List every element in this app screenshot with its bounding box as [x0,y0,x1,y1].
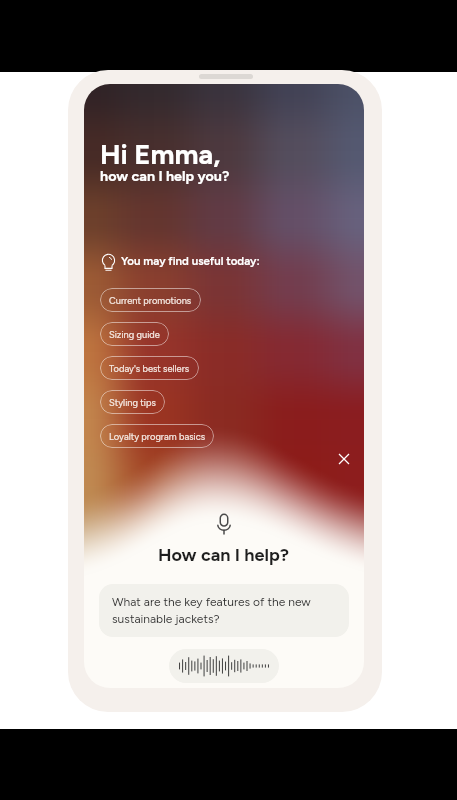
staticText: Current promotions [109,295,192,306]
button[interactable]: Sizing guide [100,322,169,346]
button[interactable]: What are the key features of the new sus… [99,584,349,637]
button[interactable]: Today's best sellers [100,356,199,380]
button[interactable]: Styling tips [100,390,165,414]
button[interactable]: Close [331,446,357,472]
button[interactable]: Microphone [212,512,236,536]
staticText: how can I help you? [100,167,230,184]
staticText: How can I help? [158,544,290,566]
staticText: Loyalty program basics [109,431,205,442]
button[interactable]: Loyalty program basics [100,424,214,448]
button[interactable]: Current promotions [100,288,201,312]
staticText: You may find useful today: [121,254,260,268]
staticText: Hi Emma, [100,138,221,171]
staticText: What are the key features of the new sus… [112,595,336,626]
staticText: Sizing guide [109,329,160,340]
button[interactable]: Voice waveform [169,649,279,683]
staticText: Styling tips [109,397,156,408]
staticText: Today's best sellers [109,363,190,374]
